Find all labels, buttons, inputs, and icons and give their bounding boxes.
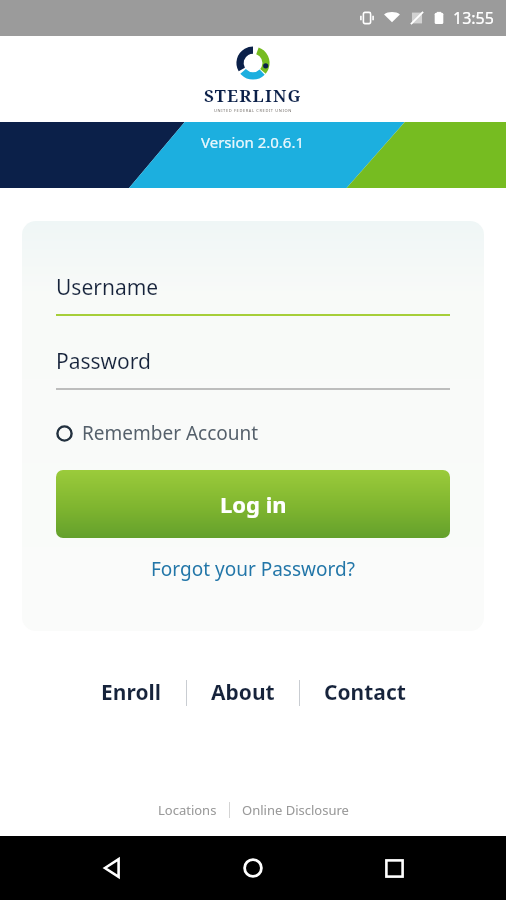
staticText: Online Disclosure — [242, 801, 349, 819]
staticText: Username — [56, 273, 159, 302]
staticText: UNITED FEDERAL CREDIT UNION — [214, 108, 292, 113]
staticText: STERLING — [204, 84, 302, 107]
staticText: Contact — [324, 678, 406, 707]
button[interactable]: Home — [224, 839, 282, 897]
staticText: Password — [56, 347, 151, 376]
staticText: Log in — [220, 489, 287, 519]
staticText: Forgot your Password? — [151, 556, 355, 582]
button[interactable]: Log in — [56, 470, 450, 538]
staticText: Locations — [158, 801, 217, 819]
button[interactable]: Recent apps — [365, 839, 423, 897]
button[interactable]: Remember Account — [56, 416, 259, 450]
button[interactable]: Forgot your Password? — [56, 556, 450, 582]
staticText: Remember Account — [82, 420, 259, 446]
button[interactable]: Online Disclosure — [236, 798, 355, 822]
button[interactable]: Contact — [314, 672, 416, 713]
staticText: 13:55 — [453, 7, 494, 29]
staticText: Enroll — [101, 678, 162, 707]
staticText: © Sharetec — [219, 832, 287, 850]
staticText: Version 2.0.6.1 — [201, 132, 305, 152]
button[interactable]: Enroll — [91, 672, 172, 713]
button[interactable]: Locations — [152, 798, 223, 822]
button[interactable]: About — [201, 672, 285, 713]
staticText: About — [211, 678, 275, 707]
button[interactable]: Back — [83, 839, 141, 897]
